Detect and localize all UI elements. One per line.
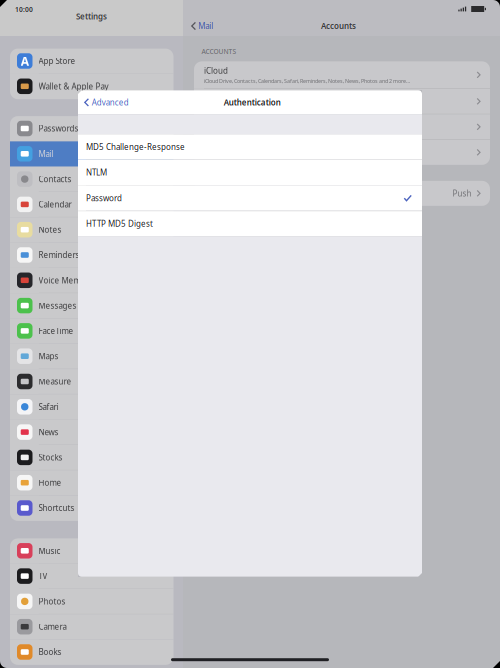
button[interactable]: HTTP MD5 Digest — [78, 211, 422, 236]
staticText: FaceTime — [38, 326, 73, 336]
button[interactable]: Mail — [10, 141, 173, 167]
staticText: Accounts — [321, 21, 356, 31]
staticText: Contacts — [38, 174, 71, 184]
staticText: Voice Memos — [38, 275, 89, 286]
button[interactable]: Photos — [10, 589, 173, 614]
button[interactable]: FaceTime — [10, 318, 173, 344]
button[interactable] — [194, 114, 490, 139]
staticText: 10:00 — [15, 5, 33, 14]
staticText: Safari — [38, 401, 58, 412]
button[interactable]: Mail — [183, 18, 217, 34]
staticText: Shortcuts — [38, 503, 74, 513]
button[interactable]: Wallet & Apple Pay — [10, 74, 173, 99]
button[interactable] — [194, 140, 490, 165]
staticText: TV — [38, 571, 47, 581]
button[interactable]: Notes — [10, 217, 173, 243]
button[interactable]: iCloud — [194, 61, 490, 88]
button[interactable]: Maps — [10, 344, 173, 369]
staticText: Stocks — [38, 452, 62, 463]
staticText: Push — [453, 188, 472, 199]
button[interactable]: MD5 Challenge-Response — [78, 134, 422, 159]
staticText: Mail — [198, 21, 213, 31]
button[interactable]: Password — [78, 186, 422, 211]
button[interactable]: Messages — [10, 293, 173, 318]
button[interactable]: Safari — [10, 394, 173, 420]
staticText: iCloud — [204, 65, 228, 76]
staticText: Reminders — [38, 250, 79, 260]
staticText: Photos — [38, 596, 65, 607]
staticText: Advanced — [92, 97, 129, 108]
button[interactable]: Music — [10, 538, 173, 564]
button[interactable]: News — [10, 420, 173, 445]
staticText: Music — [38, 545, 60, 556]
button[interactable] — [194, 89, 490, 114]
staticText: Wallet & Apple Pay — [38, 81, 108, 92]
button[interactable]: TV — [10, 564, 173, 589]
staticText: Calendar — [38, 199, 71, 210]
staticText: Measure — [38, 376, 71, 387]
button[interactable]: Stocks — [10, 445, 173, 470]
staticText: Messages — [38, 300, 76, 311]
staticText: Books — [38, 647, 61, 657]
staticText: Settings — [76, 11, 107, 22]
button[interactable]: Passwords — [10, 116, 173, 141]
button[interactable]: Reminders — [10, 243, 173, 268]
button[interactable]: A — [10, 49, 173, 74]
staticText: Home — [38, 477, 61, 488]
button[interactable]: Home — [10, 470, 173, 496]
staticText: Camera — [38, 621, 66, 632]
staticText: Maps — [38, 351, 58, 361]
staticText: ACCOUNTS — [201, 47, 236, 56]
button[interactable]: Books — [10, 640, 173, 665]
staticText: A — [21, 53, 29, 69]
button[interactable]: Camera — [10, 614, 173, 640]
staticText: Passwords — [38, 123, 78, 134]
staticText: Mail — [38, 148, 53, 159]
staticText: App Store — [38, 56, 75, 66]
staticText: Password — [86, 193, 122, 203]
staticText: MD5 Challenge-Response — [86, 142, 185, 152]
staticText: Authentication — [224, 97, 281, 108]
button[interactable]: Push — [194, 181, 490, 206]
staticText: NTLM — [86, 167, 107, 178]
staticText: iCloud Drive, Contacts, Calendars, Safar… — [204, 77, 410, 84]
button[interactable]: NTLM — [78, 160, 422, 185]
button[interactable]: Contacts — [10, 167, 173, 192]
button[interactable]: Shortcuts — [10, 496, 173, 521]
button[interactable]: Advanced — [78, 91, 133, 113]
staticText: HTTP MD5 Digest — [86, 218, 153, 229]
button[interactable]: Voice Memos — [10, 268, 173, 293]
staticText: Notes — [38, 224, 61, 235]
button[interactable]: Measure — [10, 369, 173, 394]
button[interactable]: Calendar — [10, 192, 173, 217]
staticText: News — [38, 427, 58, 437]
